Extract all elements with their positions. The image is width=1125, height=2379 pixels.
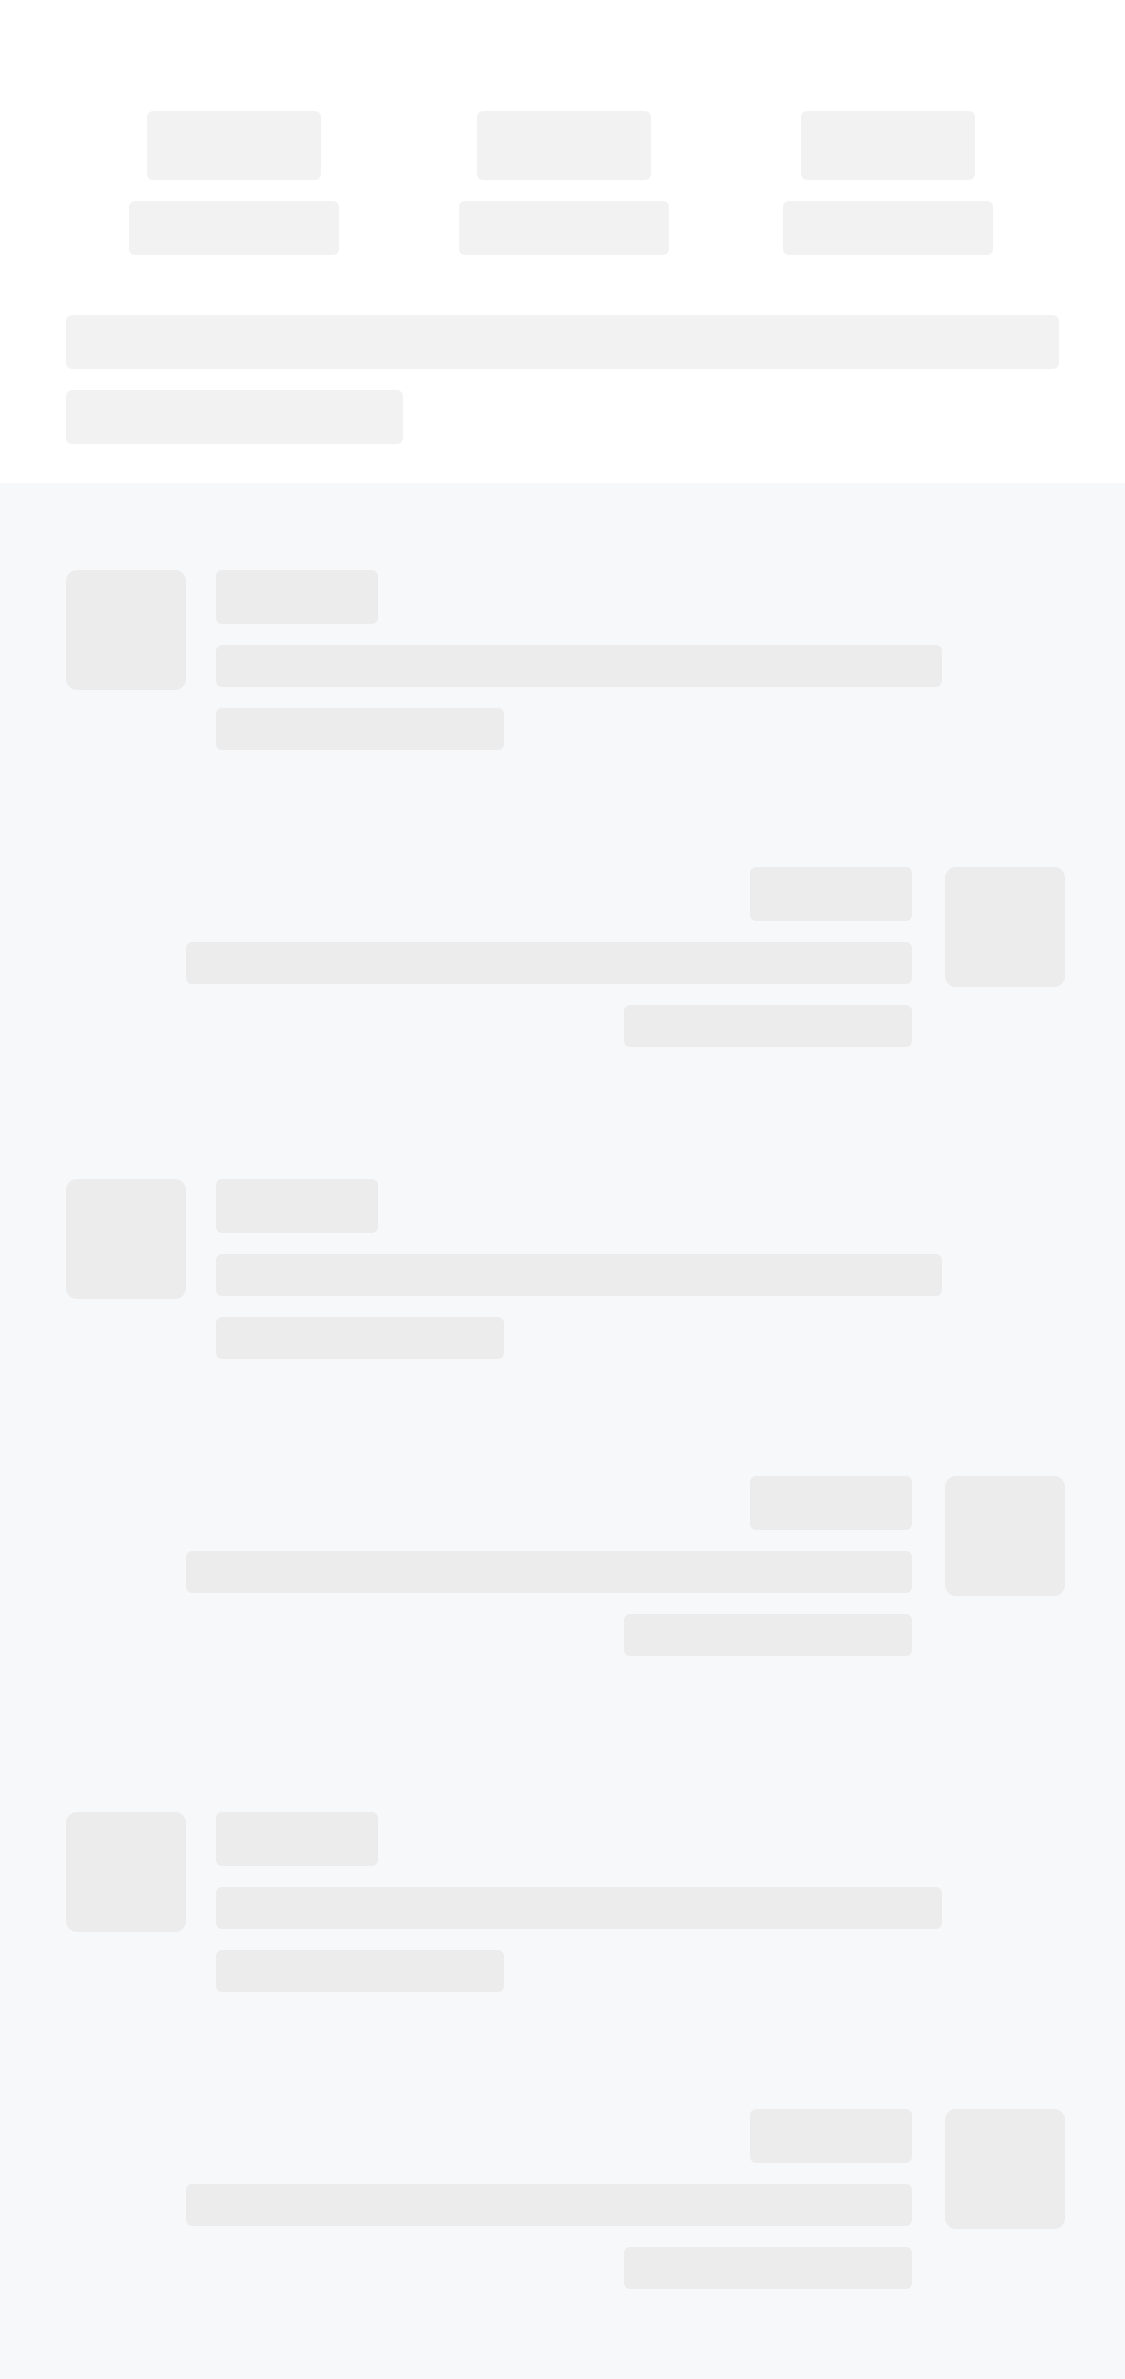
button[interactable]: Loading statistic xyxy=(459,111,669,255)
button[interactable]: Loading message xyxy=(66,570,942,750)
button[interactable]: Loading message xyxy=(186,2109,1065,2289)
button[interactable]: Loading statistic xyxy=(783,111,993,255)
button[interactable]: Loading message xyxy=(66,1179,942,1359)
button[interactable]: Loading message xyxy=(186,1476,1065,1656)
button[interactable]: Loading statistic xyxy=(129,111,339,255)
button[interactable]: Loading message xyxy=(186,867,1065,1047)
button[interactable]: Loading message xyxy=(66,1812,942,1992)
